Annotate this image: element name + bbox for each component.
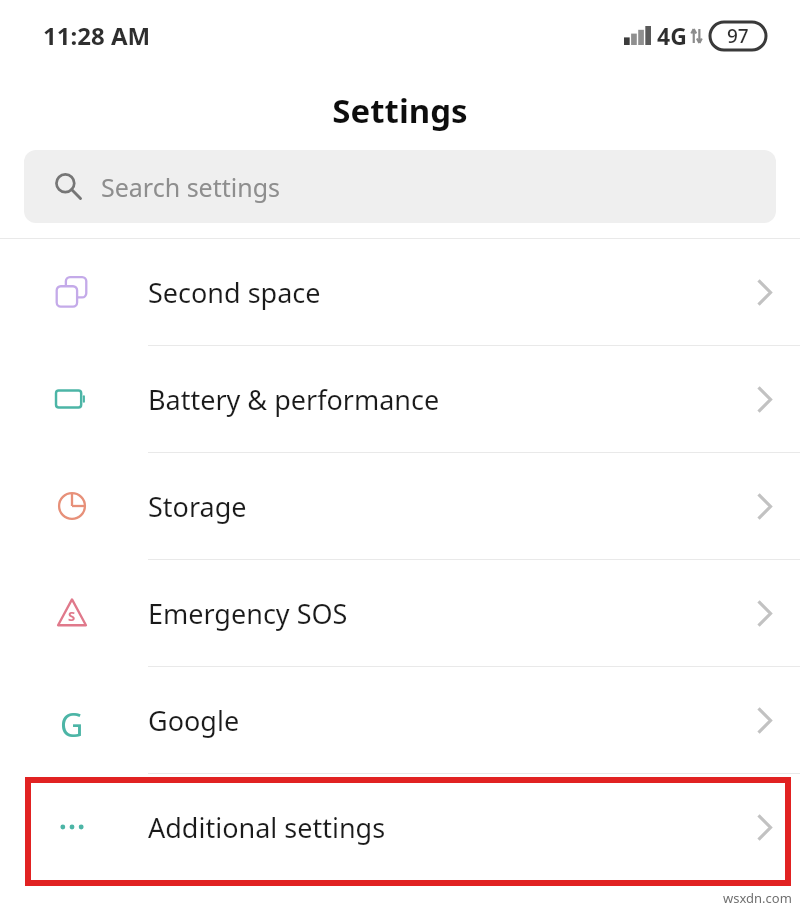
staticText: Search settings (101, 170, 281, 204)
button[interactable]: Storage (0, 453, 800, 559)
staticText: 97 (727, 23, 749, 49)
button[interactable]: Second space (0, 239, 800, 345)
button[interactable]: G (0, 667, 800, 773)
staticText: Storage (148, 488, 728, 525)
button[interactable]: S (0, 560, 800, 666)
staticText: G (60, 703, 84, 737)
staticText: 11:28 AM (43, 19, 151, 52)
staticText: Emergency SOS (148, 595, 728, 632)
staticText: Settings (332, 88, 468, 133)
staticText: Google (148, 702, 728, 739)
button[interactable]: Battery & performance (0, 346, 800, 452)
staticText: Additional settings (148, 809, 728, 846)
staticText: S (68, 607, 76, 625)
staticText: Second space (148, 274, 728, 311)
staticText: Battery & performance (148, 381, 728, 418)
staticText: wsxdn.com (723, 889, 792, 907)
staticText: 4G (657, 20, 687, 51)
button[interactable]: Additional settings (0, 774, 800, 880)
button[interactable]: Search settings (24, 150, 776, 223)
